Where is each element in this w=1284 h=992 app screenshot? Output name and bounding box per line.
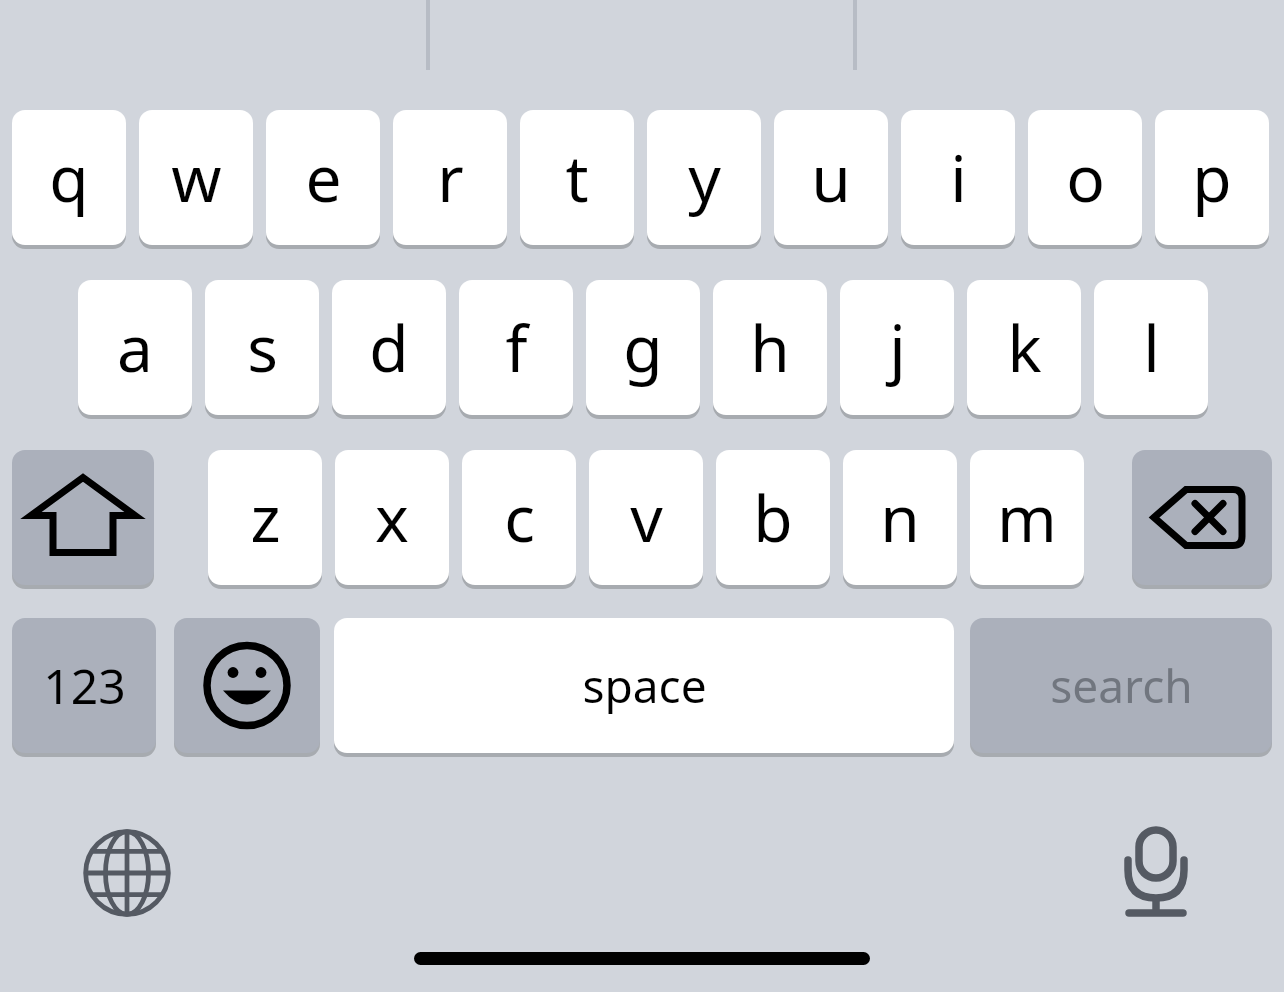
staticText: o <box>1066 134 1105 221</box>
staticText: f <box>505 304 528 391</box>
button[interactable]: n <box>843 450 957 585</box>
staticText: v <box>630 474 663 561</box>
button[interactable]: search <box>970 618 1272 753</box>
button[interactable]: l <box>1094 280 1208 415</box>
button[interactable]: h <box>713 280 827 415</box>
button[interactable]: v <box>589 450 703 585</box>
staticText: t <box>565 134 589 221</box>
staticText: e <box>305 134 342 221</box>
button[interactable]: o <box>1028 110 1142 245</box>
button[interactable]: space <box>334 618 954 753</box>
button[interactable]: k <box>967 280 1081 415</box>
button[interactable]: Next keyboard <box>80 826 174 920</box>
staticText: u <box>811 134 851 221</box>
button[interactable]: Shift <box>12 450 154 585</box>
staticText: s <box>247 304 278 391</box>
staticText: 123 <box>43 653 126 718</box>
staticText: y <box>688 134 721 221</box>
staticText: h <box>750 304 790 391</box>
button[interactable]: g <box>586 280 700 415</box>
button[interactable]: j <box>840 280 954 415</box>
staticText: g <box>623 304 663 391</box>
button[interactable]: p <box>1155 110 1269 245</box>
button[interactable]: i <box>901 110 1015 245</box>
staticText: space <box>582 654 707 717</box>
button[interactable]: r <box>393 110 507 245</box>
staticText: q <box>49 134 89 221</box>
button[interactable]: d <box>332 280 446 415</box>
button[interactable]: Dictation <box>1112 820 1200 926</box>
button[interactable]: x <box>335 450 449 585</box>
staticText: z <box>250 474 281 561</box>
staticText: a <box>117 304 153 391</box>
button[interactable]: t <box>520 110 634 245</box>
staticText: c <box>504 474 535 561</box>
staticText: r <box>437 134 464 221</box>
button[interactable]: a <box>78 280 192 415</box>
button[interactable]: f <box>459 280 573 415</box>
staticText: w <box>171 134 222 221</box>
staticText: i <box>950 134 967 221</box>
staticText: k <box>1007 304 1042 391</box>
staticText: p <box>1192 134 1232 221</box>
staticText: b <box>753 474 793 561</box>
staticText: n <box>880 474 920 561</box>
button[interactable]: c <box>462 450 576 585</box>
button[interactable]: b <box>716 450 830 585</box>
button[interactable]: Numbers <box>12 618 156 753</box>
staticText: j <box>889 304 906 391</box>
staticText: l <box>1143 304 1160 391</box>
button[interactable]: e <box>266 110 380 245</box>
button[interactable]: Emoji keyboard <box>174 618 320 753</box>
button[interactable]: q <box>12 110 126 245</box>
button[interactable]: y <box>647 110 761 245</box>
button[interactable]: m <box>970 450 1084 585</box>
button[interactable]: u <box>774 110 888 245</box>
button[interactable]: w <box>139 110 253 245</box>
staticText: m <box>997 474 1057 561</box>
staticText: d <box>369 304 409 391</box>
button[interactable]: z <box>208 450 322 585</box>
button[interactable]: Backspace <box>1132 450 1272 585</box>
staticText: x <box>375 474 409 561</box>
button[interactable]: s <box>205 280 319 415</box>
staticText: search <box>1050 654 1193 717</box>
